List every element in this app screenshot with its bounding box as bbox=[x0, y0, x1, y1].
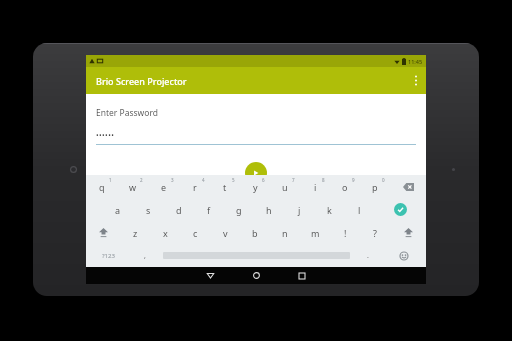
button[interactable]: h bbox=[254, 198, 284, 221]
staticText: h bbox=[266, 204, 272, 216]
staticText: v bbox=[223, 227, 228, 239]
button[interactable]: w bbox=[117, 175, 148, 198]
button[interactable]: f bbox=[194, 198, 224, 221]
staticText: j bbox=[298, 204, 301, 216]
button[interactable]: l bbox=[344, 198, 374, 221]
button[interactable]: x bbox=[150, 221, 180, 244]
button[interactable]: Start projecting bbox=[245, 162, 267, 184]
button[interactable]: ! bbox=[330, 221, 360, 244]
button[interactable]: n bbox=[270, 221, 300, 244]
button[interactable]: t bbox=[210, 175, 240, 198]
button[interactable]: Recents bbox=[279, 267, 325, 284]
button[interactable]: v bbox=[210, 221, 240, 244]
button[interactable]: d bbox=[164, 198, 194, 221]
staticText: Enter Password bbox=[96, 107, 159, 119]
staticText: •••••• bbox=[96, 131, 115, 141]
button[interactable]: r bbox=[179, 175, 210, 198]
button[interactable]: Backspace bbox=[390, 175, 426, 198]
staticText: l bbox=[358, 204, 361, 216]
button[interactable]: p bbox=[360, 175, 390, 198]
button[interactable]: y bbox=[240, 175, 270, 198]
button[interactable]: g bbox=[224, 198, 254, 221]
staticText: 5 bbox=[232, 177, 235, 183]
button[interactable]: j bbox=[284, 198, 314, 221]
staticText: 3 bbox=[171, 177, 174, 183]
staticText: m bbox=[311, 227, 320, 239]
staticText: 4 bbox=[202, 177, 205, 183]
staticText: 1 bbox=[109, 177, 112, 183]
button[interactable]: Shift bbox=[86, 221, 121, 244]
staticText: 2 bbox=[140, 177, 143, 183]
staticText: ! bbox=[344, 227, 347, 239]
button[interactable]: ?123 bbox=[86, 244, 131, 267]
staticText: w bbox=[129, 181, 137, 193]
button[interactable]: k bbox=[314, 198, 344, 221]
button[interactable]: Home bbox=[233, 267, 279, 284]
button[interactable]: i bbox=[300, 175, 330, 198]
staticText: p bbox=[372, 181, 378, 193]
staticText: ?123 bbox=[102, 252, 115, 260]
button[interactable]: Shift bbox=[390, 221, 426, 244]
staticText: 9 bbox=[352, 177, 355, 183]
button[interactable]: u bbox=[270, 175, 300, 198]
button[interactable]: o bbox=[330, 175, 360, 198]
staticText: s bbox=[146, 204, 151, 216]
staticText: u bbox=[282, 181, 288, 193]
staticText: k bbox=[327, 204, 332, 216]
staticText: d bbox=[176, 204, 182, 216]
staticText: e bbox=[161, 181, 167, 193]
staticText: r bbox=[193, 181, 197, 193]
staticText: x bbox=[163, 227, 168, 239]
staticText: a bbox=[115, 204, 121, 216]
button[interactable]: z bbox=[121, 221, 150, 244]
staticText: y bbox=[253, 181, 258, 193]
staticText: . bbox=[367, 251, 369, 261]
staticText: g bbox=[236, 204, 242, 216]
button[interactable]: s bbox=[133, 198, 164, 221]
staticText: o bbox=[342, 181, 348, 193]
staticText: c bbox=[193, 227, 198, 239]
staticText: 6 bbox=[262, 177, 265, 183]
staticText: 8 bbox=[322, 177, 325, 183]
button[interactable]: , bbox=[131, 244, 159, 267]
button[interactable]: m bbox=[300, 221, 330, 244]
staticText: , bbox=[144, 251, 146, 261]
staticText: 0 bbox=[382, 177, 385, 183]
button[interactable]: ? bbox=[360, 221, 390, 244]
button[interactable]: Space bbox=[159, 244, 354, 267]
button[interactable]: Enter bbox=[374, 198, 426, 221]
button[interactable]: b bbox=[240, 221, 270, 244]
staticText: Brio Screen Projector bbox=[96, 75, 187, 87]
button[interactable]: Back bbox=[187, 267, 233, 284]
staticText: z bbox=[133, 227, 138, 239]
button[interactable]: More options bbox=[406, 67, 426, 94]
staticText: ? bbox=[373, 227, 377, 239]
staticText: n bbox=[282, 227, 288, 239]
button[interactable]: e bbox=[148, 175, 179, 198]
button[interactable]: c bbox=[180, 221, 210, 244]
button[interactable]: Emoji bbox=[382, 244, 426, 267]
button[interactable]: q bbox=[86, 175, 117, 198]
staticText: 7 bbox=[292, 177, 295, 183]
staticText: 11:45 bbox=[408, 58, 423, 65]
staticText: i bbox=[314, 181, 317, 193]
staticText: q bbox=[99, 181, 105, 193]
staticText: b bbox=[252, 227, 258, 239]
staticText: t bbox=[223, 181, 227, 193]
staticText: f bbox=[207, 204, 211, 216]
button[interactable]: a bbox=[102, 198, 133, 221]
